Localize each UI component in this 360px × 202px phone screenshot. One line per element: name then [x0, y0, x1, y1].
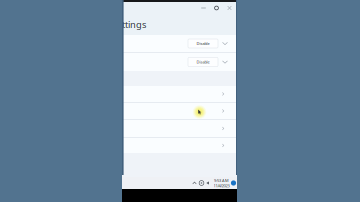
staticText: ttings	[122, 18, 146, 31]
button[interactable]: Notifications	[230, 177, 237, 189]
button[interactable]: Expand	[218, 39, 232, 48]
button[interactable]: Sync status	[198, 177, 205, 189]
staticText: 11/4/2023	[213, 183, 229, 188]
button[interactable]	[122, 120, 237, 137]
button[interactable]: Disable	[188, 39, 218, 48]
button[interactable]: Show hidden icons	[191, 177, 198, 189]
button[interactable]: Minimize	[197, 2, 210, 14]
button[interactable]: Volume	[205, 177, 212, 189]
button[interactable]: Date and time	[213, 177, 230, 189]
button[interactable]: Expand	[218, 57, 232, 66]
staticText: 9:53 AM	[214, 178, 229, 183]
staticText: Disable	[196, 41, 209, 46]
button[interactable]	[122, 103, 237, 119]
button[interactable]	[122, 86, 237, 102]
button[interactable]: Maximize	[210, 2, 223, 14]
staticText: Disable	[196, 59, 209, 65]
button[interactable]: Disable	[188, 57, 218, 66]
button[interactable]: Close	[223, 2, 236, 14]
button[interactable]	[122, 138, 237, 153]
